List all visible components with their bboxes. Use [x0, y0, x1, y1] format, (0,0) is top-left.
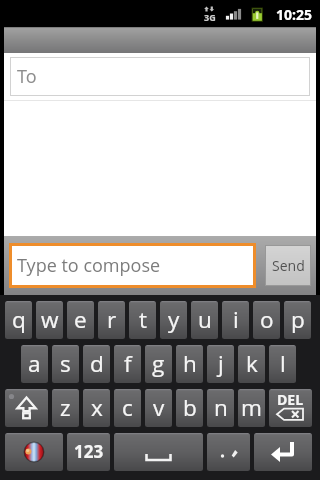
- staticText: r: [107, 304, 117, 335]
- staticText: h: [183, 348, 197, 379]
- button[interactable]: h: [176, 345, 203, 383]
- button[interactable]: c: [114, 389, 141, 427]
- staticText: n: [214, 392, 228, 423]
- button[interactable]: Send: [265, 245, 311, 286]
- button[interactable]: e: [67, 301, 94, 339]
- staticText: 3G: [204, 11, 216, 23]
- button[interactable]: i: [222, 301, 249, 339]
- button[interactable]: a: [21, 345, 48, 383]
- staticText: j: [218, 348, 224, 379]
- staticText: Send: [272, 256, 305, 275]
- button[interactable]: t: [129, 301, 156, 339]
- staticText: m: [241, 392, 262, 423]
- button[interactable]: Change input language: [5, 433, 63, 471]
- button[interactable]: r: [98, 301, 125, 339]
- button[interactable]: z: [52, 389, 79, 427]
- button[interactable]: p: [284, 301, 311, 339]
- staticText: v: [153, 392, 165, 423]
- button[interactable]: m: [238, 389, 265, 427]
- staticText: 10:25: [276, 5, 312, 24]
- button[interactable]: j: [207, 345, 234, 383]
- button[interactable]: To: [10, 57, 310, 96]
- button[interactable]: Space: [114, 433, 203, 471]
- staticText: k: [246, 348, 258, 379]
- button[interactable]: n: [207, 389, 234, 427]
- button[interactable]: Enter: [254, 433, 312, 471]
- button[interactable]: b: [176, 389, 203, 427]
- staticText: o: [260, 304, 274, 335]
- staticText: s: [60, 348, 71, 379]
- staticText: l: [280, 348, 286, 379]
- button[interactable]: Delete: [269, 389, 312, 427]
- staticText: y: [168, 304, 180, 335]
- button[interactable]: Shift: [5, 389, 48, 427]
- staticText: z: [60, 392, 71, 423]
- button[interactable]: f: [114, 345, 141, 383]
- button[interactable]: o: [253, 301, 280, 339]
- staticText: Type to compose: [17, 253, 161, 278]
- button[interactable]: k: [238, 345, 265, 383]
- staticText: x: [91, 392, 103, 423]
- button[interactable]: d: [83, 345, 110, 383]
- button[interactable]: g: [145, 345, 172, 383]
- staticText: To: [17, 64, 37, 89]
- button[interactable]: x: [83, 389, 110, 427]
- staticText: c: [122, 392, 133, 423]
- button[interactable]: s: [52, 345, 79, 383]
- button[interactable]: v: [145, 389, 172, 427]
- staticText: q: [12, 304, 26, 335]
- staticText: t: [139, 304, 147, 335]
- staticText: 123: [74, 440, 104, 463]
- staticText: e: [74, 304, 87, 335]
- staticText: DEL: [277, 390, 304, 409]
- button[interactable]: Type to compose: [9, 243, 256, 288]
- staticText: b: [183, 392, 197, 423]
- button[interactable]: w: [36, 301, 63, 339]
- staticText: w: [41, 304, 59, 335]
- staticText: a: [28, 348, 41, 379]
- button[interactable]: y: [160, 301, 187, 339]
- staticText: u: [198, 304, 212, 335]
- button[interactable]: Period and comma: [207, 433, 250, 471]
- button[interactable]: u: [191, 301, 218, 339]
- button[interactable]: q: [5, 301, 32, 339]
- staticText: d: [90, 348, 104, 379]
- button[interactable]: 123: [67, 433, 110, 471]
- staticText: f: [124, 348, 132, 379]
- button[interactable]: l: [269, 345, 296, 383]
- staticText: g: [152, 348, 165, 379]
- staticText: i: [233, 304, 239, 335]
- staticText: p: [291, 304, 305, 335]
